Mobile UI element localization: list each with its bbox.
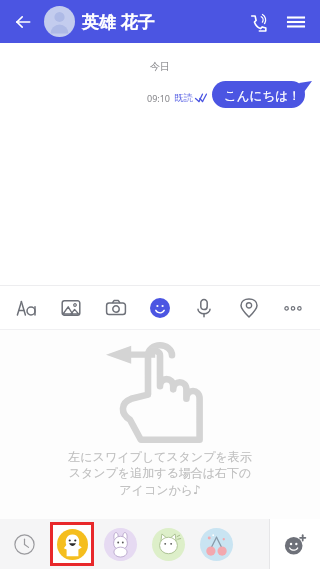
button[interactable]: Gallery [54, 291, 88, 325]
button[interactable]: Recent [0, 519, 48, 569]
button[interactable]: Voice [187, 291, 221, 325]
button[interactable]: Cherry sticker set [192, 519, 240, 569]
button[interactable]: Call [244, 8, 272, 36]
button[interactable]: Stickers [143, 291, 177, 325]
button[interactable]: Text style [10, 291, 44, 325]
button[interactable]: Cat sticker set [144, 519, 192, 569]
button[interactable]: Profile [44, 6, 75, 37]
button[interactable]: Menu [282, 8, 310, 36]
staticText: 今日 [150, 60, 170, 73]
staticText: こんにちは！ [224, 88, 301, 104]
button[interactable]: More [276, 291, 310, 325]
button[interactable]: Location [232, 291, 266, 325]
staticText: 英雄 花子 [82, 10, 155, 33]
button[interactable]: こんにちは！ [212, 81, 312, 108]
staticText: 09:10 [147, 92, 171, 104]
button[interactable]: Bunny sticker set [96, 519, 144, 569]
button[interactable]: Add stickers [270, 519, 320, 569]
button[interactable]: Moon sticker set [48, 519, 96, 569]
staticText: 左にスワイプしてスタンプを表示 スタンプを追加する場合は右下の アイコンから♪ [68, 449, 252, 497]
staticText: 既読 [174, 92, 193, 104]
button[interactable]: Camera [99, 291, 133, 325]
button[interactable]: Back [10, 9, 36, 35]
